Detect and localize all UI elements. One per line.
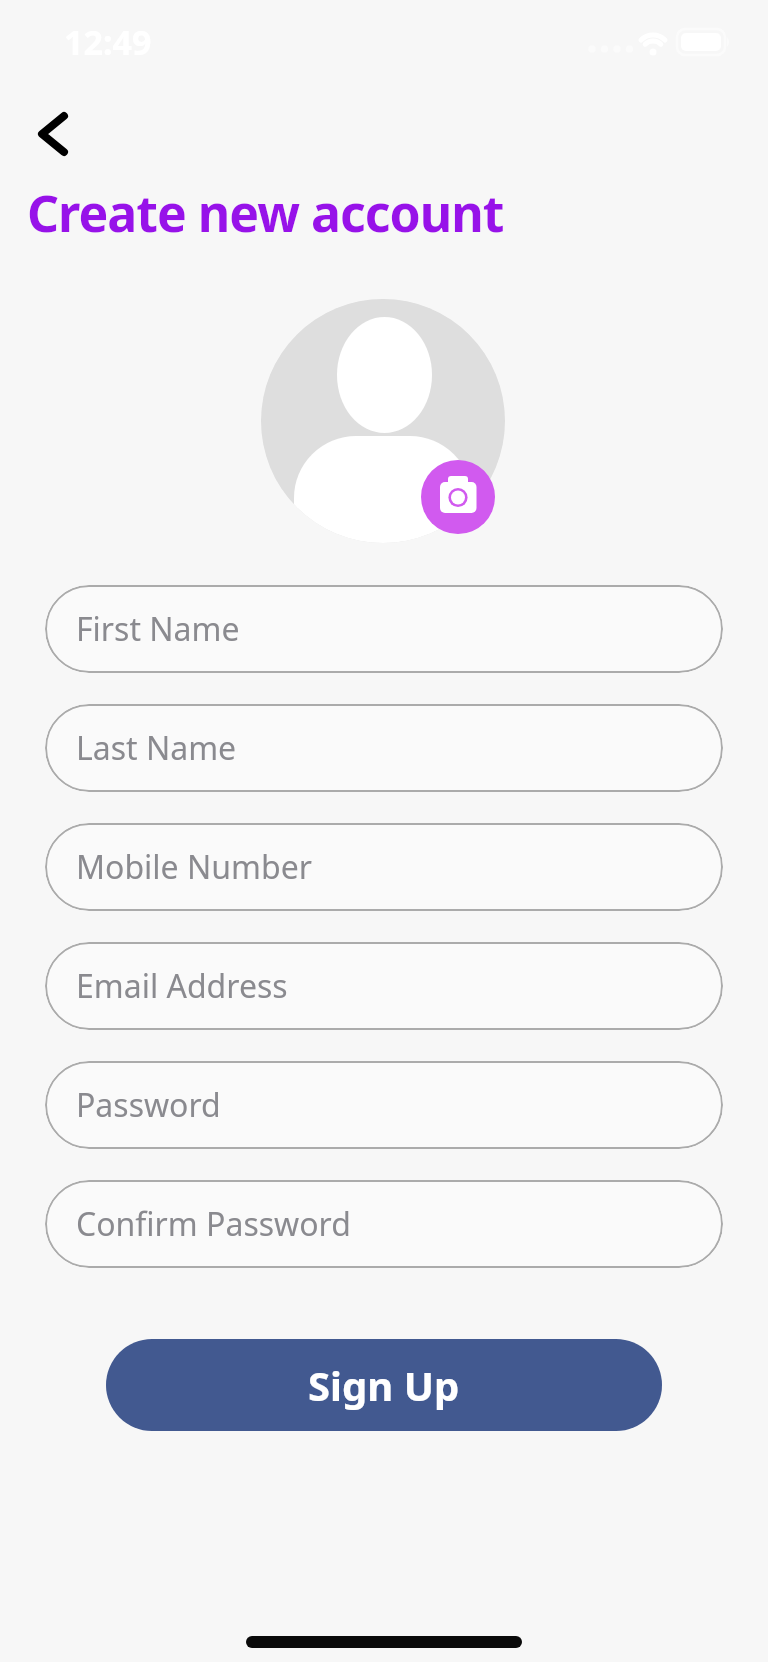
button[interactable]: Sign Up [106,1339,662,1431]
button[interactable]: Mobile Number [45,823,723,911]
button[interactable]: Email Address [45,942,723,1030]
staticText: Mobile Number [76,845,312,889]
staticText: 12:49 [64,19,152,65]
button[interactable]: Last Name [45,704,723,792]
staticText: Confirm Password [76,1202,351,1246]
staticText: Last Name [76,726,237,770]
staticText: Sign Up [308,1358,460,1412]
staticText: First Name [76,607,240,651]
button[interactable]: First Name [45,585,723,673]
staticText: Password [76,1083,221,1127]
staticText: Email Address [76,964,288,1008]
button[interactable] [28,104,80,164]
button[interactable]: Confirm Password [45,1180,723,1268]
button[interactable] [421,460,495,534]
button[interactable]: Password [45,1061,723,1149]
staticText: Create new account [27,179,504,247]
